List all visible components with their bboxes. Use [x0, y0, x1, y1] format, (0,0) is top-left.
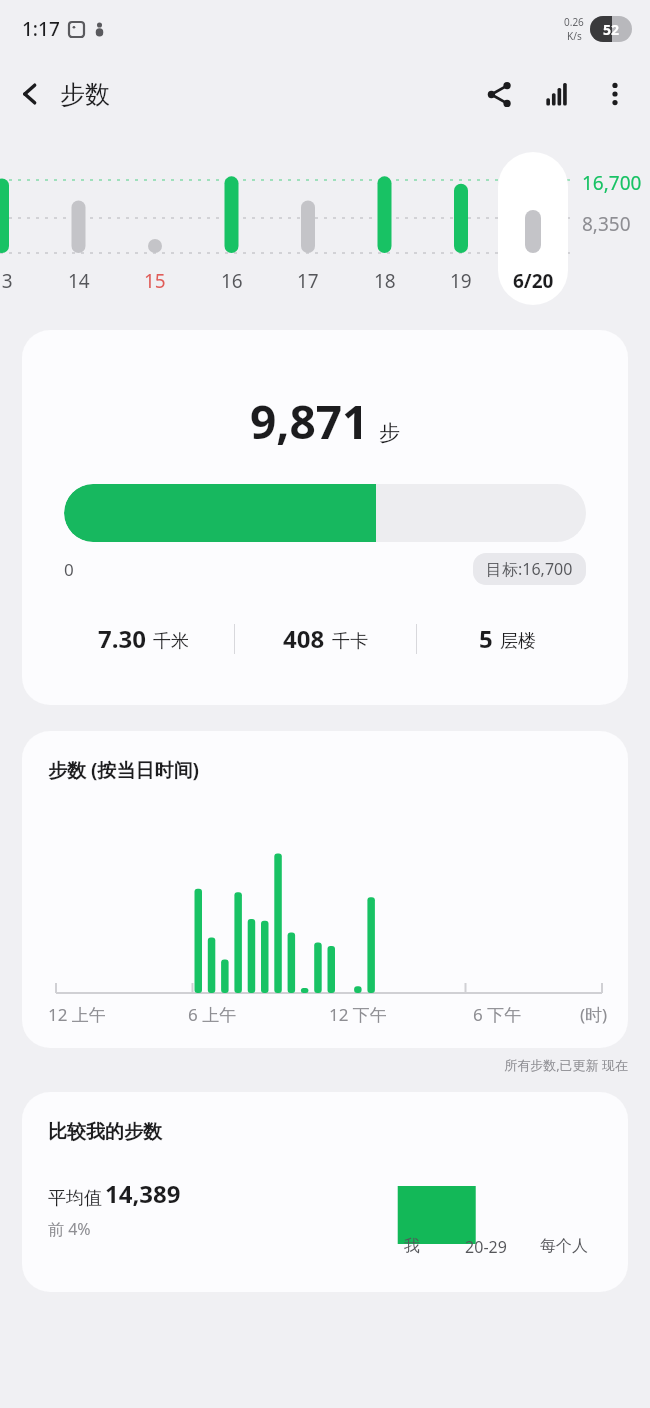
button[interactable]: Share [470, 65, 528, 123]
staticText: 5 [479, 622, 493, 655]
staticText: 0.26 [564, 15, 584, 29]
button[interactable]: 17 [278, 268, 338, 294]
staticText: 层楼 [500, 630, 536, 653]
button[interactable]: 9,871 [22, 330, 628, 705]
staticText: 12 下午 [329, 1003, 387, 1026]
staticText: 0 [64, 558, 74, 581]
button[interactable]: 6/20 [503, 268, 563, 294]
staticText: 13 [0, 268, 13, 294]
button[interactable]: 16 [202, 268, 262, 294]
staticText: 14,389 [105, 1177, 181, 1210]
button[interactable]: 15 [125, 268, 185, 294]
button[interactable]: 比较我的步数 [22, 1092, 628, 1292]
button[interactable]: 5 [417, 622, 598, 655]
button[interactable]: 19 [431, 268, 491, 294]
staticText: 1:17 [22, 16, 60, 42]
staticText: 目标:16,700 [486, 558, 573, 580]
staticText: 52 [603, 20, 620, 39]
staticText: 16 [221, 268, 243, 294]
staticText: 7.30 [98, 622, 146, 655]
staticText: 前 4% [48, 1218, 91, 1240]
staticText: 比较我的步数 [48, 1120, 162, 1144]
staticText: 6 上午 [188, 1003, 237, 1026]
staticText: 18 [374, 268, 396, 294]
staticText: 步数 [60, 79, 110, 110]
staticText: 每个人 [525, 1236, 603, 1256]
staticText: 千卡 [332, 630, 368, 653]
button[interactable]: 14 [49, 268, 109, 294]
button[interactable]: 7.30 [52, 622, 234, 655]
staticText: 千米 [153, 630, 189, 653]
staticText: 我 [377, 1236, 447, 1256]
staticText: 19 [450, 268, 472, 294]
staticText: 12 上午 [48, 1003, 106, 1026]
staticText: 6/20 [513, 268, 554, 294]
staticText: 16,700 [582, 170, 642, 196]
staticText: 步 [379, 420, 400, 446]
button[interactable]: Chart [528, 65, 586, 123]
staticText: K/s [567, 29, 582, 43]
staticText: 步数 (按当日时间) [48, 757, 199, 783]
staticText: 15 [144, 268, 166, 294]
button[interactable]: 18 [355, 268, 415, 294]
button[interactable]: Back [0, 64, 60, 124]
button[interactable]: 408 [235, 622, 416, 655]
staticText: 17 [297, 268, 319, 294]
staticText: 14 [68, 268, 90, 294]
button[interactable]: More options [586, 65, 644, 123]
staticText: 平均值 [48, 1187, 102, 1210]
staticText: 9,871 [250, 390, 369, 453]
staticText: 20-29 [447, 1236, 525, 1258]
button[interactable]: 步数 (按当日时间) [22, 731, 628, 1048]
staticText: (时) [580, 1003, 608, 1026]
button[interactable]: 13 [0, 268, 32, 294]
staticText: 6 下午 [473, 1003, 522, 1026]
staticText: 408 [283, 622, 325, 655]
staticText: 所有步数,已更新 现在 [0, 1056, 628, 1074]
staticText: 8,350 [582, 211, 631, 237]
